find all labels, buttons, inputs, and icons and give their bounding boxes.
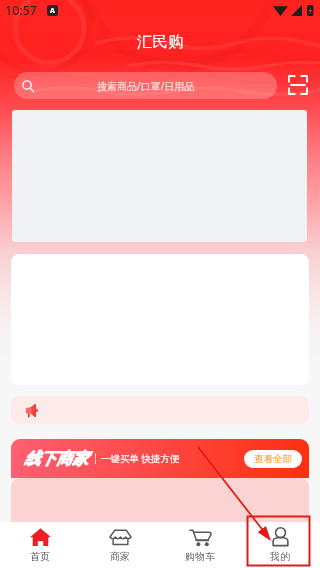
- staticText: 10:57: [5, 2, 38, 19]
- staticText: 查看全部: [254, 453, 292, 465]
- button[interactable]: 购物车: [160, 522, 240, 568]
- staticText: 首页: [30, 550, 50, 563]
- staticText: 购物车: [185, 550, 215, 563]
- button[interactable]: 我的: [240, 522, 320, 568]
- staticText: 一键买单 快捷方便: [101, 452, 180, 465]
- staticText: 我的: [270, 550, 290, 563]
- staticText: 商家: [110, 550, 130, 563]
- staticText: A: [50, 6, 55, 16]
- button[interactable]: 搜索商品/口罩/日用品: [14, 72, 277, 99]
- staticText: 线下商家: [24, 449, 88, 469]
- button[interactable]: [11, 396, 309, 424]
- button[interactable]: 商家: [80, 522, 160, 568]
- staticText: 搜索商品/口罩/日用品: [97, 79, 195, 93]
- button[interactable]: Scan: [286, 73, 310, 97]
- button[interactable]: 查看全部: [244, 450, 302, 468]
- staticText: 汇民购: [137, 32, 184, 52]
- button[interactable]: 线下商家: [11, 439, 309, 478]
- button[interactable]: 首页: [0, 522, 80, 568]
